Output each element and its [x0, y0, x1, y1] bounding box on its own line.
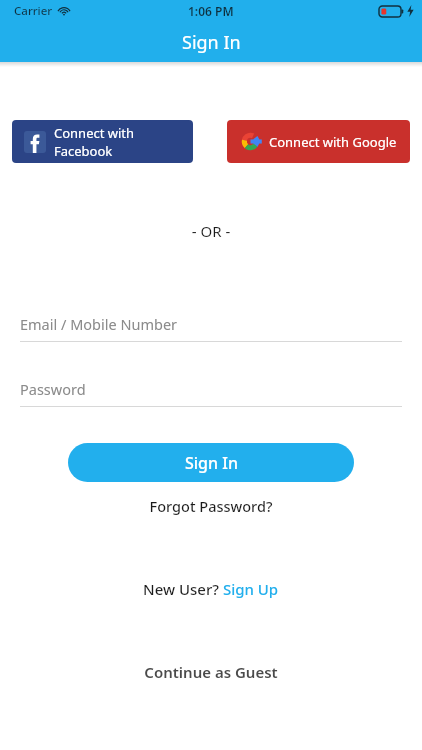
staticText: Email / Mobile Number [20, 314, 178, 334]
button[interactable]: Forgot Password? [0, 494, 422, 518]
button[interactable]: New User? Sign Up [137, 576, 285, 602]
button[interactable]: Password [20, 379, 402, 407]
staticText: - OR - [0, 221, 422, 241]
staticText: Sign In [185, 452, 238, 474]
staticText: New User? Sign Up [143, 579, 279, 599]
button[interactable]: Email / Mobile Number [20, 314, 402, 342]
staticText: Sign In [182, 30, 241, 55]
staticText: 1:06 PM [188, 3, 234, 19]
staticText: Password [20, 379, 86, 399]
button[interactable]: Sign In [68, 443, 354, 482]
staticText: Connect with Google [269, 133, 397, 151]
button[interactable]: Connect with Facebook [12, 120, 193, 163]
button[interactable]: Connect with Google [227, 120, 410, 163]
staticText: Connect with Facebook [54, 124, 193, 160]
button[interactable]: Continue as Guest [0, 659, 422, 685]
staticText: Carrier [14, 3, 53, 19]
